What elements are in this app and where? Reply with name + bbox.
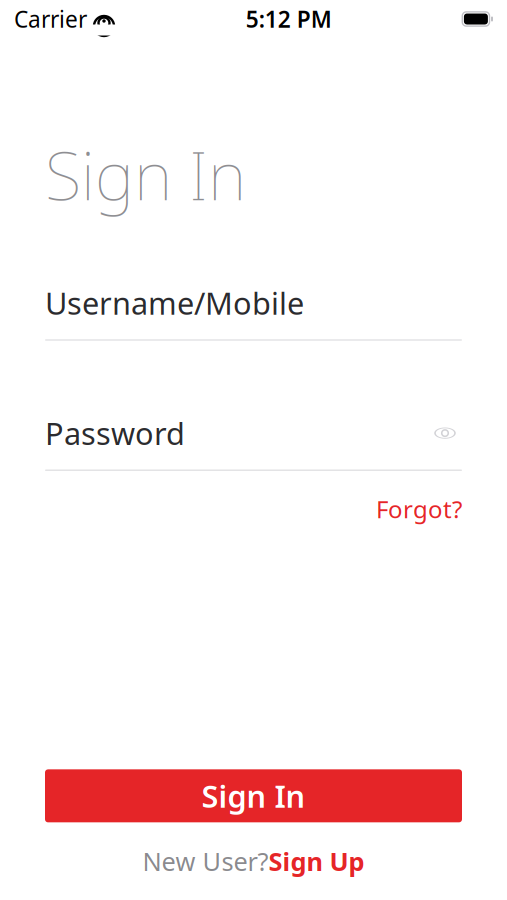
staticText: 5:12 PM [246, 4, 332, 34]
staticText: Forgot? [376, 493, 462, 525]
staticText: Sign In [201, 775, 305, 816]
staticText: Password [45, 413, 185, 453]
staticText: Username/Mobile [45, 282, 304, 323]
staticText: Sign Up [268, 844, 364, 878]
button[interactable]: New User? [142, 844, 364, 878]
button[interactable]: Sign In [45, 769, 462, 822]
staticText: New User? [142, 844, 268, 878]
staticText: Carrier [14, 4, 87, 34]
button[interactable]: Show password [428, 420, 462, 446]
staticText: Sign In [45, 130, 246, 218]
button[interactable]: Forgot? [376, 489, 462, 529]
